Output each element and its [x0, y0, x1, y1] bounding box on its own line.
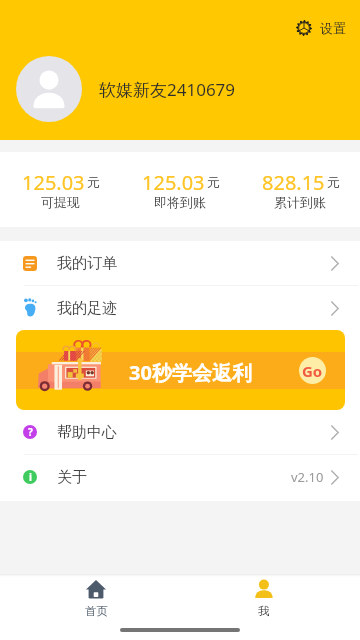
- staticText: 设置: [320, 20, 346, 36]
- staticText: 关于: [57, 468, 87, 487]
- staticText: 累计到账: [274, 194, 326, 210]
- button[interactable]: 我的订单: [0, 241, 360, 285]
- staticText: 即将到账: [154, 194, 206, 210]
- staticText: 软媒新友2410679: [99, 78, 236, 101]
- staticText: 828.15: [262, 169, 325, 196]
- staticText: ?: [28, 425, 33, 439]
- staticText: 帮助中心: [57, 423, 117, 442]
- staticText: 元: [327, 174, 340, 190]
- button[interactable]: 首页: [66, 577, 126, 618]
- staticText: i: [29, 470, 32, 484]
- staticText: 我的足迹: [57, 299, 117, 318]
- staticText: 125.03: [22, 169, 85, 196]
- staticText: Go: [302, 361, 323, 381]
- staticText: 125.03: [142, 169, 205, 196]
- button[interactable]: 设置: [293, 17, 349, 39]
- button[interactable]: 我: [234, 577, 294, 618]
- other: 设置: [296, 20, 312, 36]
- staticText: 元: [207, 174, 220, 190]
- staticText: 元: [87, 174, 100, 190]
- staticText: 我: [258, 604, 270, 618]
- button[interactable]: ?: [0, 410, 360, 454]
- staticText: v2.10: [291, 468, 324, 486]
- button[interactable]: 30秒学会返利: [16, 330, 345, 410]
- staticText: 30秒学会返利: [129, 359, 252, 386]
- staticText: 首页: [85, 604, 108, 618]
- staticText: 我的订单: [57, 254, 117, 273]
- staticText: 可提现: [41, 194, 80, 210]
- button[interactable]: i: [0, 455, 360, 499]
- button[interactable]: 我的足迹: [0, 286, 360, 330]
